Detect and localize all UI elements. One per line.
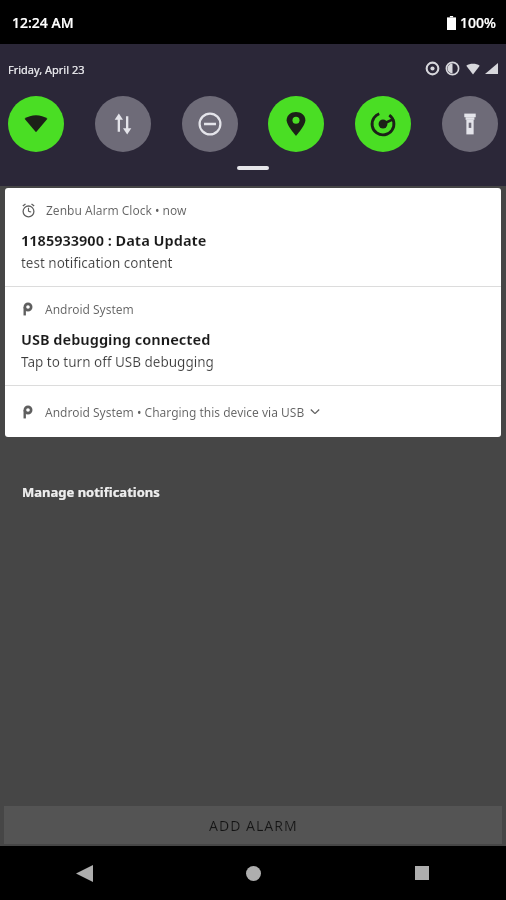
staticText: Friday, April 23: [8, 62, 85, 77]
staticText: Android System: [45, 301, 134, 317]
button[interactable]: Home: [224, 846, 282, 900]
staticText: ADD ALARM: [209, 816, 298, 835]
button[interactable]: [237, 166, 269, 170]
button[interactable]: Android System • Charging this device vi…: [5, 386, 501, 437]
staticText: test notification content: [21, 254, 173, 272]
staticText: USB debugging connected: [21, 329, 211, 349]
button[interactable]: Back: [55, 846, 113, 900]
button[interactable]: Screen record: [355, 96, 411, 152]
staticText: Manage notifications: [22, 483, 160, 501]
staticText: Android System • Charging this device vi…: [45, 404, 305, 420]
button[interactable]: Location: [268, 96, 324, 152]
button[interactable]: Mobile data: [95, 96, 151, 152]
button[interactable]: ADD ALARM: [4, 806, 502, 844]
staticText: Zenbu Alarm Clock • now: [46, 202, 187, 218]
button[interactable]: Zenbu Alarm Clock • now: [5, 188, 501, 286]
staticText: Tap to turn off USB debugging: [21, 353, 214, 371]
button[interactable]: Android System: [5, 287, 501, 385]
staticText: 100%: [460, 13, 496, 32]
button[interactable]: Manage notifications: [10, 477, 172, 507]
button[interactable]: Recents: [393, 846, 451, 900]
button[interactable]: Do not disturb: [182, 96, 238, 152]
staticText: 12:24 AM: [12, 13, 74, 32]
staticText: 1185933900 : Data Update: [21, 230, 207, 250]
button[interactable]: Wi-Fi: [8, 96, 64, 152]
button[interactable]: Flashlight: [442, 96, 498, 152]
